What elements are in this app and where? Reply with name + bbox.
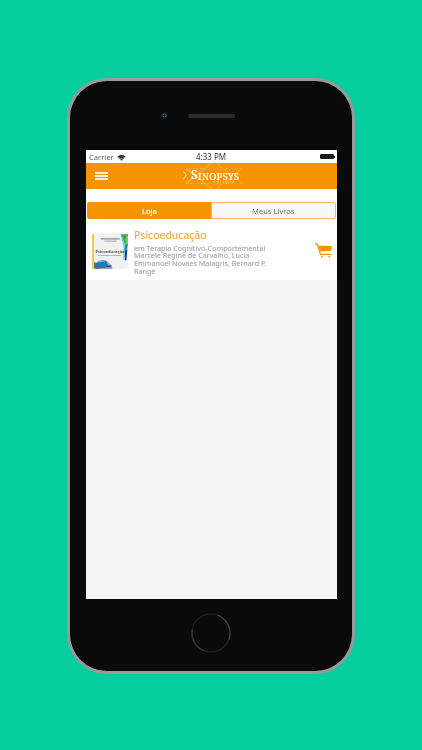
staticText: e d i t o r a [213,179,235,184]
staticText: INOPSYS [198,170,240,183]
button[interactable]: Loja [87,202,211,219]
button[interactable]: Menu [90,165,112,187]
button[interactable]: Meus Livros [211,202,336,219]
staticText: em Terapia Cognitivo-Comportamental Marc… [134,243,276,277]
staticText: Meus Livros [252,206,295,216]
staticText: Loja [142,206,157,216]
staticText: Psicoeducação [95,249,125,254]
staticText: S [191,166,198,183]
staticText: Carrier [89,152,114,162]
button[interactable]: Psicoeducação [86,220,337,280]
staticText: 4:33 PM [196,151,227,162]
staticText: Psicoeducação [134,228,207,242]
button[interactable]: Add to cart [313,240,333,260]
